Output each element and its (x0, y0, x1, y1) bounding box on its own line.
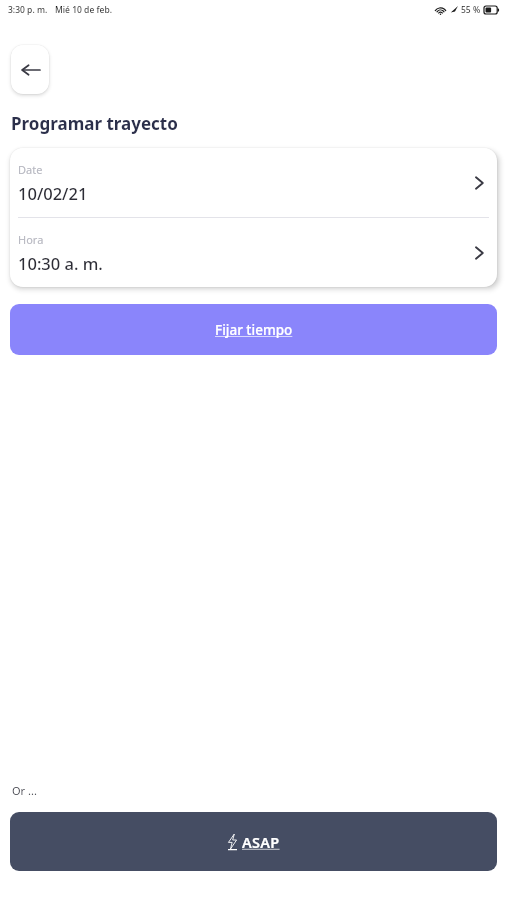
staticText: 55 % (461, 4, 481, 16)
staticText: 10/02/21 (18, 182, 88, 204)
staticText: ASAP (242, 832, 280, 852)
staticText: Or ... (12, 783, 37, 798)
staticText: 10:30 a. m. (18, 252, 103, 274)
button[interactable]: Back (11, 45, 49, 94)
staticText: Mié 10 de feb. (55, 4, 112, 16)
staticText: Fijar tiempo (215, 321, 293, 339)
staticText: Hora (18, 232, 44, 247)
button[interactable]: Fijar tiempo (10, 304, 497, 355)
staticText: Date (18, 162, 43, 177)
staticText: Programar trayecto (11, 112, 178, 135)
button[interactable]: Hora (10, 218, 497, 287)
button[interactable]: Date (10, 148, 497, 217)
staticText: 3:30 p. m. (8, 4, 48, 16)
button[interactable]: ASAP (10, 812, 497, 871)
